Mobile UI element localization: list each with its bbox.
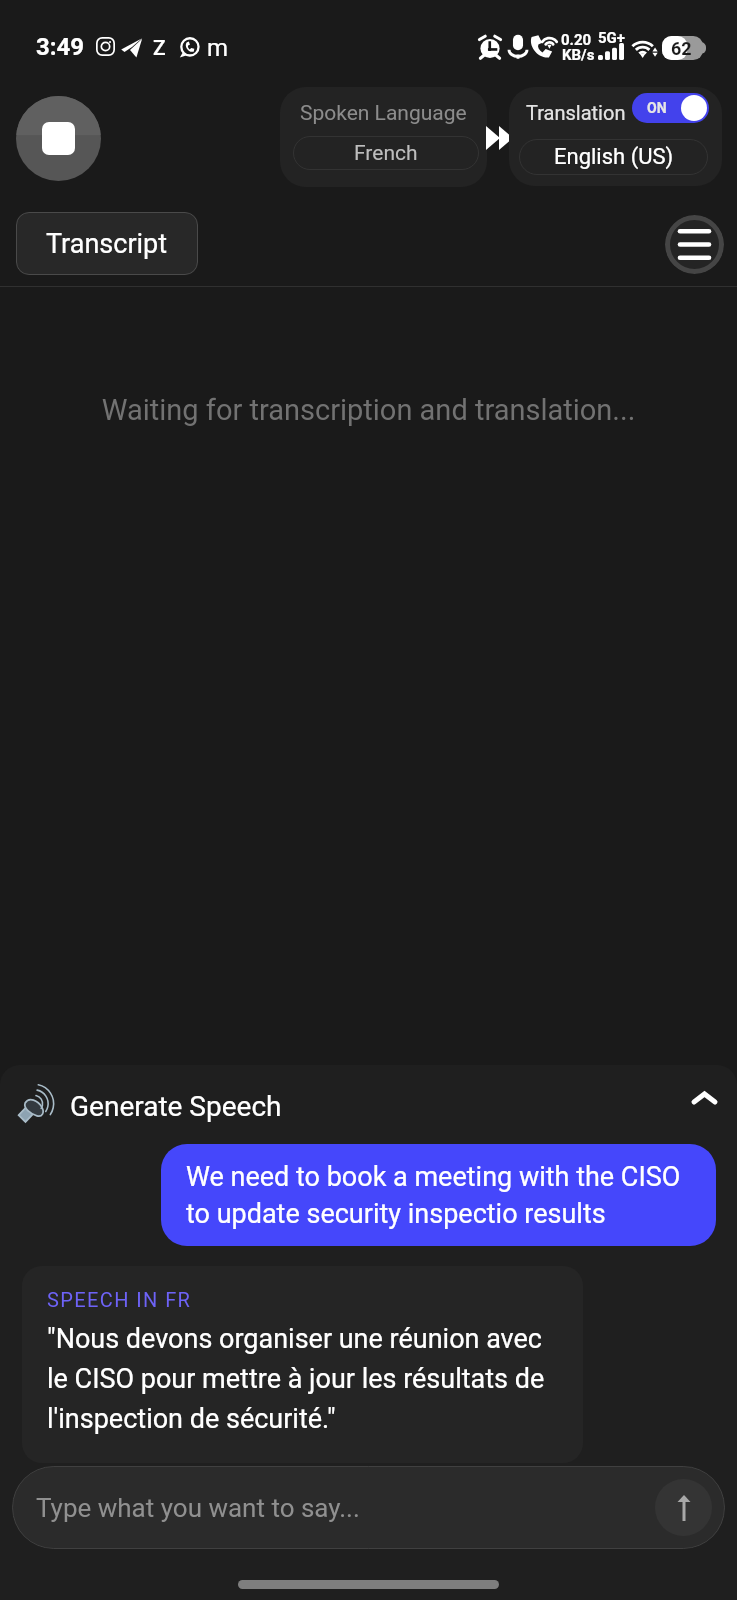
- staticText: Z: [153, 36, 166, 61]
- staticText: Type what you want to say...: [36, 1493, 360, 1523]
- staticText: Translation: [526, 101, 626, 124]
- staticText: French: [354, 141, 418, 166]
- staticText: ON: [647, 100, 667, 116]
- staticText: 0.20: [561, 31, 592, 49]
- button[interactable]: Translation on: [632, 93, 709, 123]
- staticText: Spoken Language: [300, 101, 467, 126]
- button[interactable]: Collapse: [676, 1070, 732, 1126]
- button[interactable]: Type what you want to say...: [12, 1466, 725, 1549]
- staticText: English (US): [554, 144, 674, 170]
- button[interactable]: Send: [655, 1479, 712, 1536]
- button[interactable]: Spoken Language: [280, 87, 487, 187]
- staticText: "Nous devons organiser une réunion avec …: [47, 1323, 559, 1434]
- button[interactable]: Translation: [509, 87, 722, 186]
- staticText: Generate Speech: [70, 1090, 282, 1123]
- staticText: SPEECH IN FR: [47, 1288, 192, 1311]
- button[interactable]: Stop recording: [16, 96, 101, 181]
- staticText: 3:49: [36, 33, 85, 61]
- button[interactable]: Transcript: [16, 212, 198, 275]
- staticText: We need to book a meeting with the CISO …: [186, 1161, 696, 1230]
- button[interactable]: Menu: [665, 215, 724, 274]
- staticText: KB/s: [562, 46, 595, 64]
- staticText: Transcript: [46, 228, 168, 260]
- staticText: 62: [671, 38, 692, 59]
- staticText: 5G+: [598, 29, 626, 47]
- staticText: Waiting for transcription and translatio…: [0, 393, 737, 427]
- button[interactable]: Generate Speech: [0, 1068, 737, 1144]
- staticText: m: [207, 34, 229, 62]
